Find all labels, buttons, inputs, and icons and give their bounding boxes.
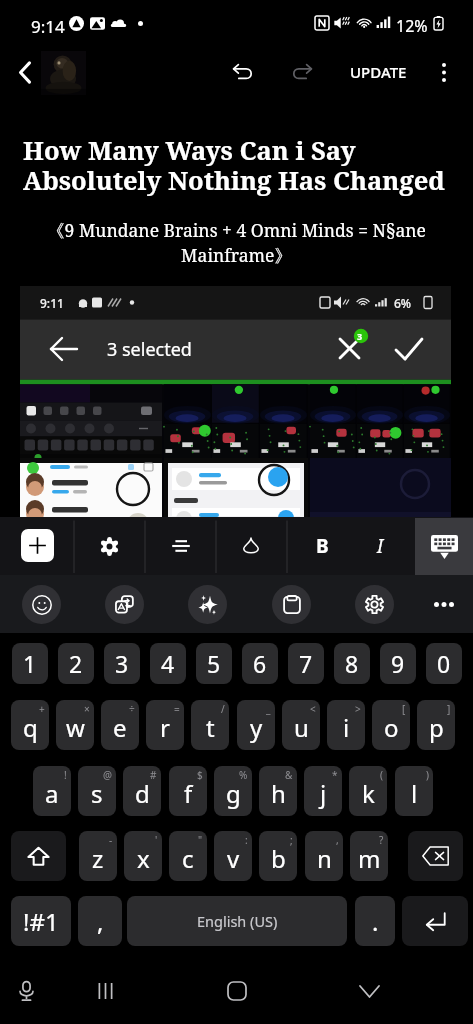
- staticText: !#1: [23, 905, 59, 938]
- staticText: x: [137, 842, 150, 875]
- button[interactable]: f: [169, 766, 207, 816]
- staticText: 2: [69, 648, 83, 679]
- button[interactable]: Space: [127, 896, 347, 946]
- staticText: c: [182, 842, 194, 875]
- staticText: /: [221, 702, 225, 716]
- button[interactable]: x: [124, 831, 162, 881]
- staticText: (: [380, 768, 383, 782]
- button[interactable]: k: [349, 766, 387, 816]
- staticText: $: [197, 768, 203, 782]
- staticText: _: [266, 702, 271, 716]
- button[interactable]: Emoji: [22, 585, 61, 624]
- button[interactable]: Recent apps: [83, 969, 127, 1013]
- button[interactable]: b: [259, 831, 297, 881]
- staticText: 3: [115, 648, 129, 679]
- staticText: @: [103, 768, 112, 782]
- staticText: #: [150, 768, 157, 782]
- button[interactable]: 9:11: [20, 286, 451, 518]
- button[interactable]: p: [417, 700, 455, 750]
- button[interactable]: Italic: [358, 522, 402, 570]
- button[interactable]: d: [123, 766, 161, 816]
- button[interactable]: Backspace: [408, 831, 463, 881]
- staticText: 1: [23, 648, 37, 679]
- button[interactable]: 1: [12, 643, 48, 684]
- staticText: UPDATE: [350, 62, 407, 82]
- button[interactable]: Bold: [300, 522, 344, 570]
- button[interactable]: 3: [104, 643, 140, 684]
- button[interactable]: w: [56, 700, 94, 750]
- button[interactable]: c: [169, 831, 207, 881]
- button[interactable]: Shift: [11, 831, 66, 881]
- button[interactable]: t: [191, 700, 229, 750]
- staticText: ]: [447, 702, 451, 716]
- staticText: r: [160, 711, 170, 744]
- button[interactable]: v: [214, 831, 252, 881]
- button[interactable]: 6: [242, 643, 278, 684]
- staticText: %: [239, 768, 248, 782]
- staticText: ;: [290, 833, 293, 847]
- button[interactable]: g: [214, 766, 252, 816]
- button[interactable]: 7: [288, 643, 324, 684]
- button[interactable]: Enter: [402, 896, 468, 946]
- staticText: t: [206, 711, 215, 744]
- staticText: :: [245, 833, 248, 847]
- staticText: ?: [379, 833, 384, 847]
- staticText: >: [355, 702, 361, 716]
- staticText: q: [23, 711, 38, 744]
- button[interactable]: a: [33, 766, 71, 816]
- button[interactable]: Keyboard settings: [355, 585, 394, 624]
- button[interactable]: Translate: [105, 585, 144, 624]
- button[interactable]: n: [305, 831, 343, 881]
- button[interactable]: !#1: [11, 896, 71, 946]
- button[interactable]: Voice input: [4, 969, 48, 1013]
- staticText: &: [285, 768, 293, 782]
- button[interactable]: y: [237, 700, 275, 750]
- button[interactable]: Home: [215, 969, 259, 1013]
- staticText: 9:14: [31, 15, 65, 38]
- button[interactable]: u: [282, 700, 320, 750]
- button[interactable]: j: [304, 766, 342, 816]
- button[interactable]: Clipboard: [272, 585, 311, 624]
- staticText: +: [39, 702, 45, 716]
- button[interactable]: l: [395, 766, 433, 816]
- button[interactable]: More options: [426, 54, 462, 90]
- button[interactable]: Back: [7, 55, 43, 89]
- button[interactable]: e: [101, 700, 139, 750]
- button[interactable]: o: [372, 700, 410, 750]
- staticText: -: [109, 833, 113, 847]
- staticText: !: [64, 768, 67, 782]
- staticText: v: [227, 842, 240, 875]
- button[interactable]: Cover image: [41, 51, 86, 95]
- button[interactable]: .: [355, 896, 395, 946]
- staticText: 9: [391, 648, 405, 679]
- button[interactable]: UPDATE: [344, 54, 412, 90]
- button[interactable]: r: [146, 700, 184, 750]
- button[interactable]: 8: [334, 643, 370, 684]
- button[interactable]: s: [78, 766, 116, 816]
- button[interactable]: ,: [78, 896, 122, 946]
- button[interactable]: Add: [21, 529, 54, 562]
- button[interactable]: More: [422, 582, 466, 626]
- button[interactable]: 4: [150, 643, 186, 684]
- button[interactable]: Align: [159, 522, 203, 570]
- button[interactable]: h: [259, 766, 297, 816]
- staticText: ,: [97, 905, 104, 938]
- button[interactable]: Hide keyboard: [347, 969, 391, 1013]
- button[interactable]: Highlight: [229, 522, 273, 570]
- button[interactable]: 2: [58, 643, 94, 684]
- staticText: How Many Ways Can i Say Absolutely Nothi…: [23, 133, 453, 198]
- button[interactable]: i: [327, 700, 365, 750]
- button[interactable]: AI writing: [188, 585, 227, 624]
- button[interactable]: Redo: [284, 54, 320, 90]
- button[interactable]: q: [11, 700, 49, 750]
- button[interactable]: Hide keyboard: [415, 518, 473, 575]
- button[interactable]: 0: [426, 643, 462, 684]
- button[interactable]: 9: [380, 643, 416, 684]
- staticText: 9:11: [40, 295, 64, 311]
- button[interactable]: Undo: [224, 54, 260, 90]
- button[interactable]: m: [350, 831, 388, 881]
- button[interactable]: z: [79, 831, 117, 881]
- button[interactable]: Text settings: [87, 522, 131, 570]
- staticText: <: [310, 702, 316, 716]
- button[interactable]: 5: [196, 643, 232, 684]
